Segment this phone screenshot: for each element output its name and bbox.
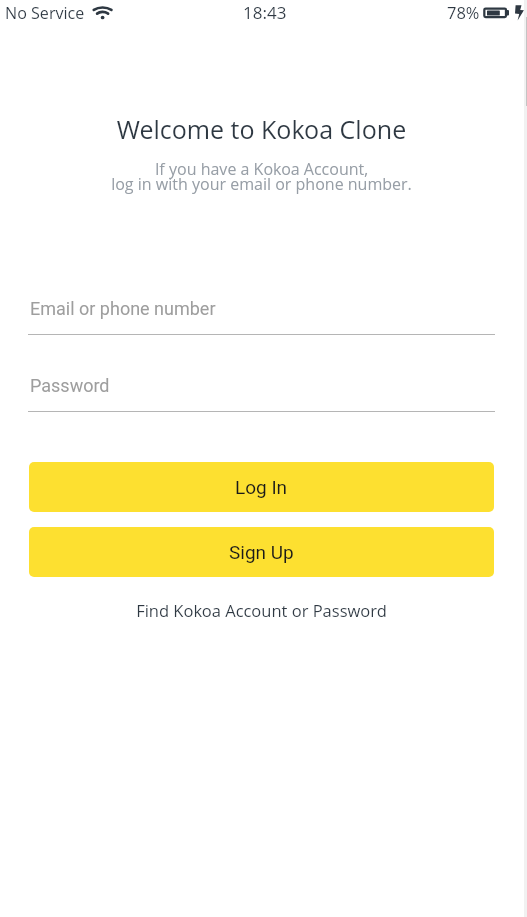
staticText: Welcome to Kokoa Clone	[0, 112, 523, 146]
staticText: Log In	[235, 476, 288, 498]
button[interactable]: Log In	[29, 462, 494, 512]
button[interactable]: Sign Up	[29, 527, 494, 577]
staticText: 78%	[447, 1, 480, 23]
staticText: Password	[30, 375, 110, 396]
staticText: 18:43	[243, 1, 287, 24]
button[interactable]: Email or phone number	[28, 298, 495, 335]
staticText: Email or phone number	[30, 298, 216, 319]
staticText: If you have a Kokoa Account, log in with…	[0, 158, 523, 195]
button[interactable]: Find Kokoa Account or Password	[0, 599, 523, 621]
staticText: No Service	[5, 2, 85, 24]
staticText: Sign Up	[229, 541, 294, 563]
button[interactable]: Password	[28, 375, 495, 412]
other: Wi-Fi, battery 78 percent, charging	[0, 0, 523, 26]
